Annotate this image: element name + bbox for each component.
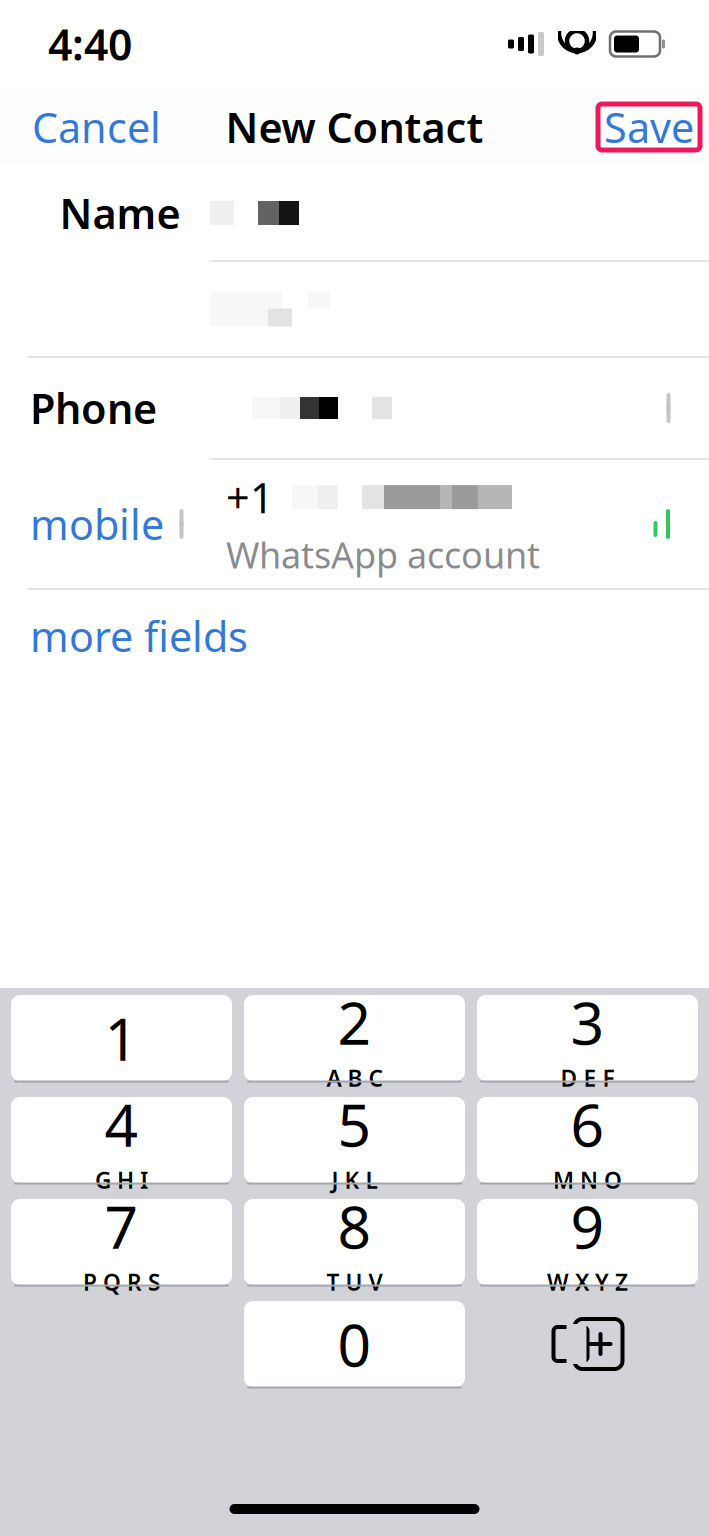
staticText: +1 xyxy=(226,470,274,525)
staticText: 8 xyxy=(337,1187,371,1265)
button[interactable]: more fields xyxy=(0,590,709,682)
staticText: mobile xyxy=(30,497,164,551)
button[interactable]: Delete xyxy=(477,1301,698,1387)
staticText: M N O xyxy=(553,1165,622,1195)
button[interactable]: 8 xyxy=(244,1199,465,1285)
staticText: 1 xyxy=(104,999,138,1077)
staticText: Cancel xyxy=(32,100,161,154)
staticText: W X Y Z xyxy=(547,1267,628,1297)
staticText: 6 xyxy=(570,1085,604,1163)
button[interactable]: 3 xyxy=(477,995,698,1081)
button[interactable]: 6 xyxy=(477,1097,698,1183)
button[interactable]: 7 xyxy=(11,1199,232,1285)
staticText: 2 xyxy=(337,983,371,1061)
staticText: 4:40 xyxy=(48,16,132,72)
staticText: 3 xyxy=(570,983,604,1061)
button[interactable]: 9 xyxy=(477,1199,698,1285)
button[interactable]: 1 xyxy=(11,995,232,1081)
button[interactable]: mobile xyxy=(30,502,194,546)
staticText: A B C xyxy=(326,1063,382,1093)
staticText: 5 xyxy=(337,1085,371,1163)
button[interactable]: 2 xyxy=(244,995,465,1081)
button[interactable]: Cancel xyxy=(22,88,171,166)
button[interactable]: Save xyxy=(598,104,700,150)
staticText: G H I xyxy=(95,1165,148,1195)
staticText: New Contact xyxy=(225,100,483,154)
staticText: Phone xyxy=(30,381,157,435)
staticText: WhatsApp account xyxy=(226,530,540,578)
button[interactable]: 0 xyxy=(244,1301,465,1387)
staticText: P Q R S xyxy=(83,1267,160,1297)
button[interactable]: 5 xyxy=(244,1097,465,1183)
staticText: T U V xyxy=(326,1267,382,1297)
staticText: 7 xyxy=(104,1187,138,1265)
staticText: 0 xyxy=(337,1305,371,1383)
staticText: 9 xyxy=(570,1187,604,1265)
staticText: 4 xyxy=(104,1085,138,1163)
staticText: D E F xyxy=(560,1063,614,1093)
staticText: J K L xyxy=(331,1165,377,1195)
button[interactable]: 4 xyxy=(11,1097,232,1183)
staticText: Name xyxy=(59,186,180,240)
staticText: Save xyxy=(604,100,694,154)
staticText: more fields xyxy=(30,609,248,663)
